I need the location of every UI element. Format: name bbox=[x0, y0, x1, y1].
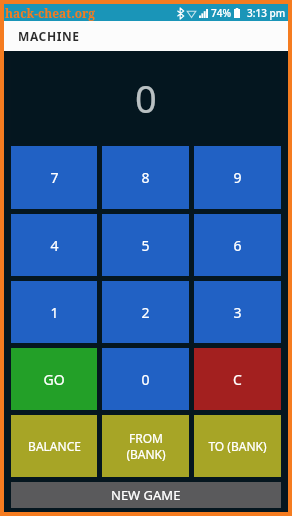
staticText: 5 bbox=[141, 236, 150, 255]
staticText: 0 bbox=[135, 72, 157, 124]
staticText: 4 bbox=[50, 236, 59, 255]
staticText: TO (BANK) bbox=[208, 438, 267, 454]
staticText: 74% bbox=[211, 6, 231, 20]
staticText: 1 bbox=[50, 303, 59, 322]
staticText: GO bbox=[43, 370, 65, 389]
staticText: 3:13 pm bbox=[247, 6, 286, 20]
staticText: 7 bbox=[50, 168, 59, 187]
button[interactable]: TO (BANK) bbox=[194, 415, 281, 477]
button[interactable]: C bbox=[194, 348, 281, 410]
staticText: 6 bbox=[233, 236, 242, 255]
button[interactable]: GO bbox=[11, 348, 97, 410]
button[interactable]: 8 bbox=[102, 146, 189, 209]
staticText: BALANCE bbox=[28, 438, 81, 454]
button[interactable]: 7 bbox=[11, 146, 97, 209]
button[interactable]: 1 bbox=[11, 281, 97, 343]
button[interactable]: 3 bbox=[194, 281, 281, 343]
staticText: 9 bbox=[233, 168, 242, 187]
button[interactable]: 2 bbox=[102, 281, 189, 343]
staticText: MACHINE bbox=[18, 28, 80, 44]
staticText: hack-cheat.org bbox=[5, 5, 96, 21]
button[interactable]: 0 bbox=[102, 348, 189, 410]
staticText: 0 bbox=[141, 370, 150, 389]
button[interactable]: NEW GAME bbox=[11, 482, 281, 508]
button[interactable]: 4 bbox=[11, 214, 97, 276]
button[interactable]: 9 bbox=[194, 146, 281, 209]
staticText: C bbox=[233, 370, 242, 389]
staticText: 2 bbox=[141, 303, 150, 322]
staticText: NEW GAME bbox=[111, 486, 181, 504]
button[interactable]: BALANCE bbox=[11, 415, 97, 477]
staticText: 8 bbox=[141, 168, 150, 187]
button[interactable]: 5 bbox=[102, 214, 189, 276]
staticText: 3 bbox=[233, 303, 242, 322]
button[interactable]: FROM (BANK) bbox=[102, 415, 189, 477]
staticText: FROM (BANK) bbox=[126, 430, 166, 462]
button[interactable]: 6 bbox=[194, 214, 281, 276]
